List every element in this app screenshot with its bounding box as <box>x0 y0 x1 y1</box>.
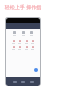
button[interactable]: Grid item <box>12 46 15 50</box>
button[interactable]: Add <box>34 68 38 72</box>
button[interactable]: Grid item <box>25 46 28 50</box>
button[interactable]: Grid item <box>31 46 34 50</box>
button[interactable]: Nav <box>30 81 34 83</box>
staticText: 轻松上手 操作指南 <box>3 4 43 11</box>
button[interactable]: Grid item <box>18 40 21 44</box>
button[interactable]: Grid item <box>25 40 28 44</box>
button[interactable]: Grid item <box>31 40 34 44</box>
button[interactable]: Nav <box>21 81 25 83</box>
button[interactable]: Grid item <box>22 31 25 36</box>
button[interactable]: Grid item <box>12 40 15 44</box>
button[interactable]: Grid item <box>30 31 33 36</box>
button[interactable]: Grid item <box>13 31 16 36</box>
button[interactable]: Grid item <box>18 46 21 50</box>
button[interactable]: Nav <box>13 81 17 83</box>
